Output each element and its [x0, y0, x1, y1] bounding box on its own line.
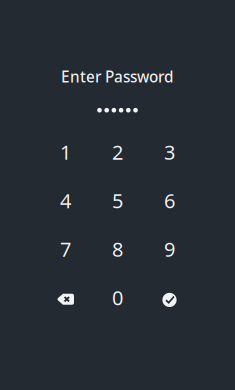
staticText: Enter Password	[61, 66, 174, 87]
button[interactable]: 0	[91, 274, 143, 320]
staticText: 6	[164, 187, 175, 214]
button[interactable]: 4	[39, 177, 91, 223]
staticText: 4	[60, 187, 71, 214]
button[interactable]: 9	[143, 226, 195, 272]
staticText: 3	[164, 139, 175, 165]
button[interactable]: 6	[143, 177, 195, 223]
staticText: 5	[112, 187, 123, 214]
button[interactable]: 3	[143, 129, 195, 175]
staticText: 2	[112, 139, 123, 165]
staticText: 9	[164, 236, 175, 262]
button[interactable]: 5	[91, 177, 143, 223]
button[interactable]: Confirm	[143, 274, 195, 320]
staticText: 8	[112, 236, 123, 262]
staticText: 0	[112, 284, 123, 311]
button[interactable]: Delete	[39, 274, 91, 320]
button[interactable]: 1	[39, 129, 91, 175]
button[interactable]: 8	[91, 226, 143, 272]
button[interactable]: 7	[39, 226, 91, 272]
button[interactable]: 2	[91, 129, 143, 175]
staticText: 1	[60, 139, 71, 165]
staticText: 7	[60, 236, 71, 262]
